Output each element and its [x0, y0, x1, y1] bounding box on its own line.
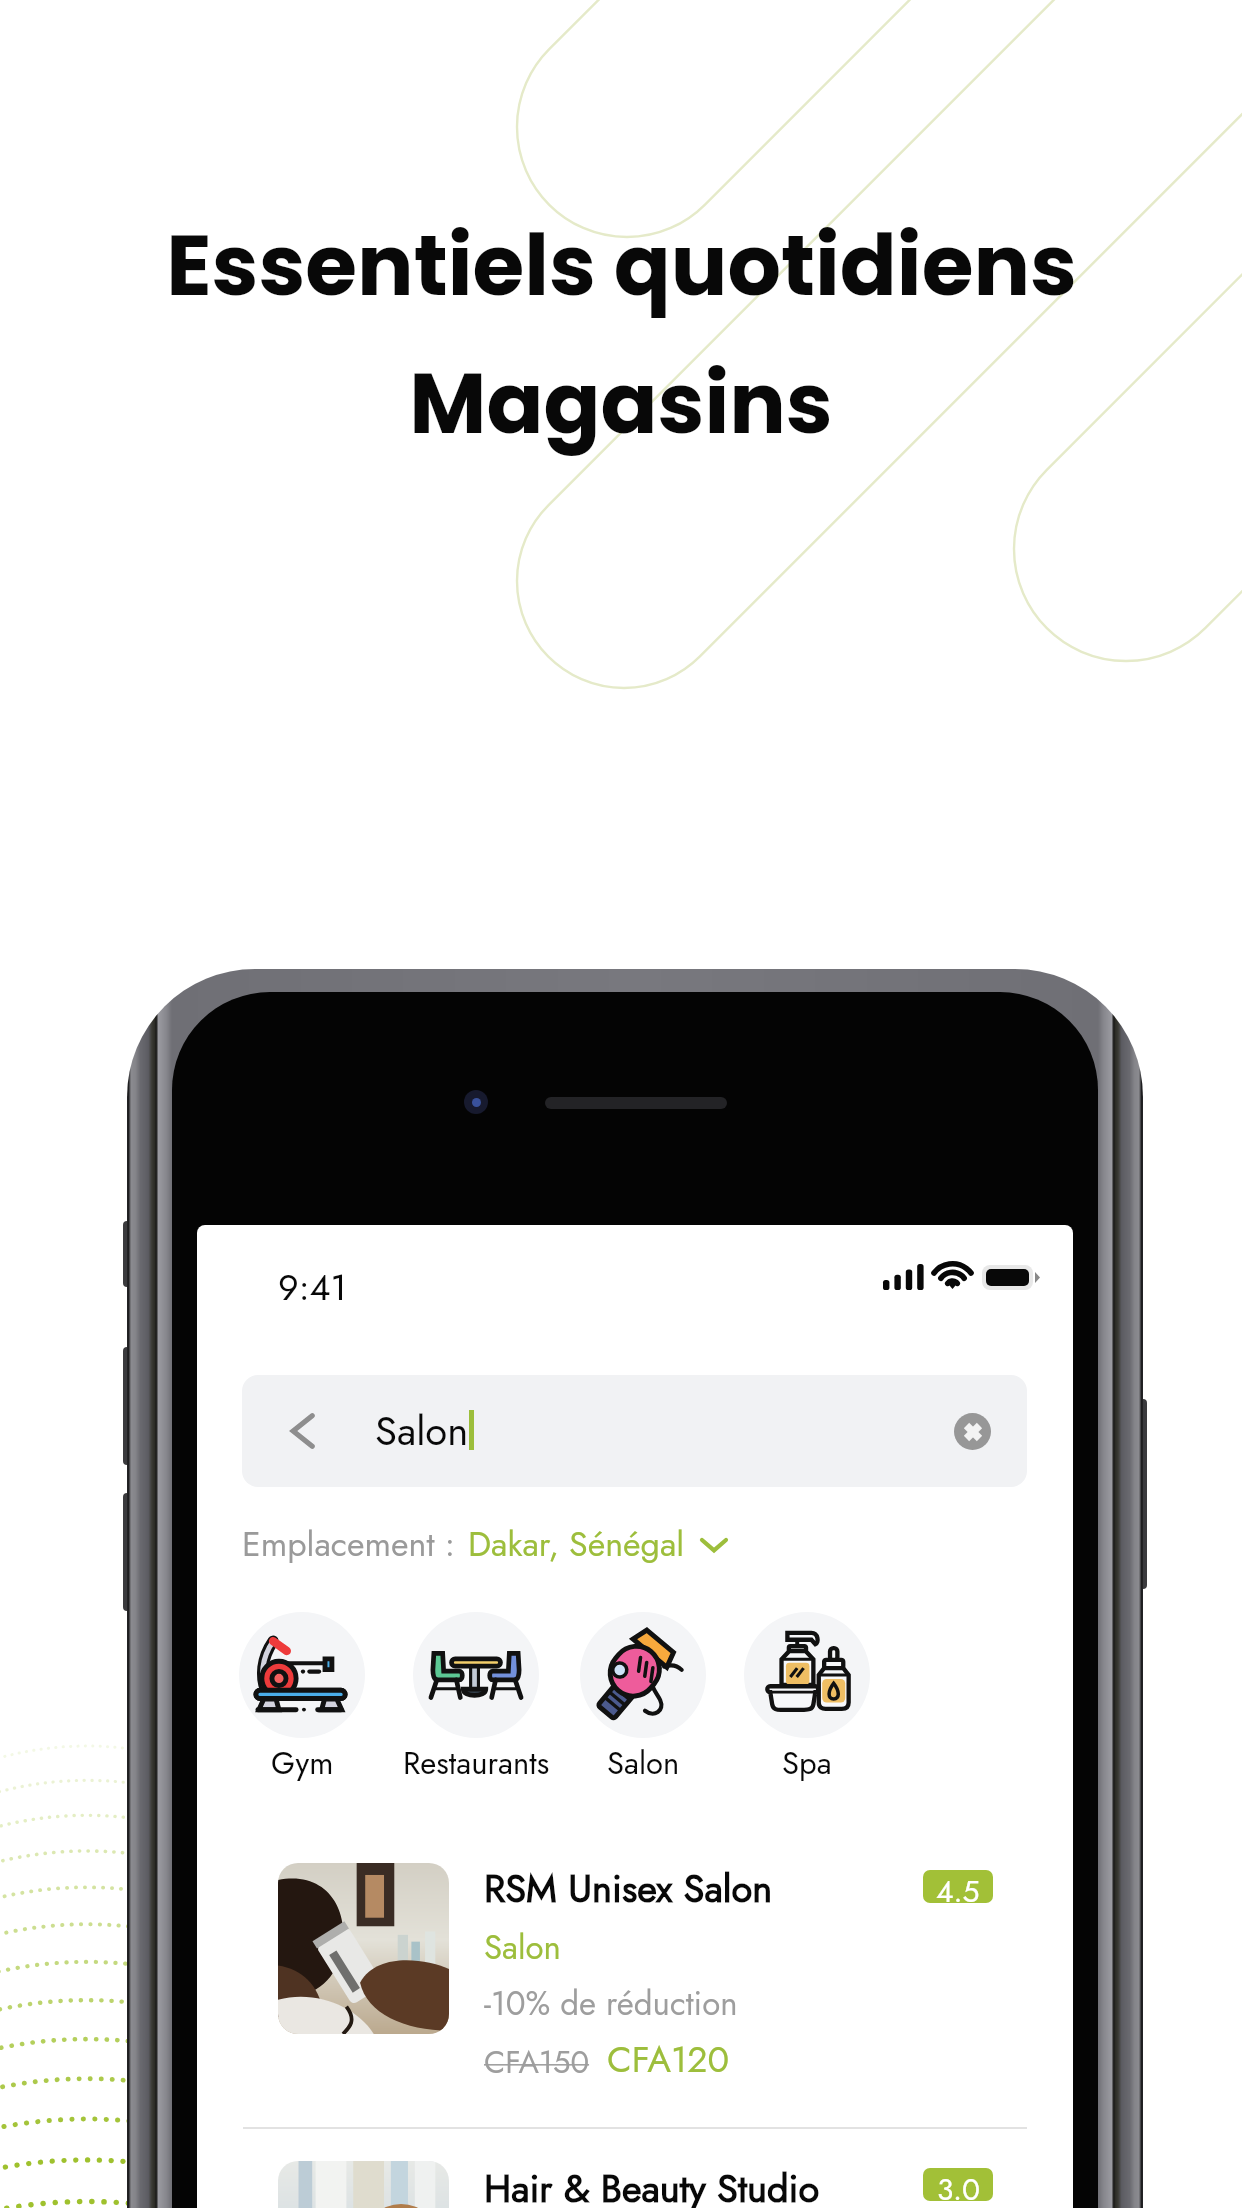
staticText: Salon: [607, 1741, 680, 1786]
staticText: Restaurants: [403, 1741, 550, 1786]
staticText: Essentiels quotidiens: [166, 207, 1077, 325]
staticText: Salon: [375, 1402, 469, 1460]
staticText: -10% de réduction: [484, 1980, 738, 2028]
staticText: 4.5: [936, 1870, 980, 1903]
staticText: Hair & Beauty Studio: [484, 2161, 820, 2208]
button[interactable]: Salon: [543, 1612, 743, 1786]
staticText: Spa: [782, 1741, 832, 1786]
staticText: Salon: [484, 1924, 561, 1972]
staticText: 9:41: [278, 1261, 347, 1313]
staticText: Magasins: [409, 345, 833, 463]
button[interactable]: 3.0: [923, 2168, 993, 2201]
staticText: CFA120: [607, 2033, 730, 2085]
button[interactable]: Back: [242, 1375, 1027, 1487]
staticText: Emplacement :: [242, 1520, 455, 1569]
button[interactable]: RSM Unisex Salon: [197, 1863, 1073, 2127]
button[interactable]: Restaurants: [376, 1612, 576, 1786]
staticText: Dakar, Sénégal: [468, 1520, 685, 1569]
button[interactable]: Spa: [707, 1612, 907, 1786]
button[interactable]: Hair & Beauty Studio: [197, 2129, 1073, 2208]
button[interactable]: 4.5: [923, 1870, 993, 1903]
staticText: RSM Unisex Salon: [484, 1861, 773, 1916]
staticText: Gym: [271, 1741, 334, 1786]
button[interactable]: Back: [280, 1409, 324, 1453]
staticText: CFA150: [484, 2040, 590, 2085]
button[interactable]: Gym: [202, 1612, 402, 1786]
button[interactable]: Emplacement :: [242, 1520, 727, 1569]
button[interactable]: Clear search: [954, 1413, 991, 1450]
staticText: 3.0: [937, 2168, 980, 2201]
